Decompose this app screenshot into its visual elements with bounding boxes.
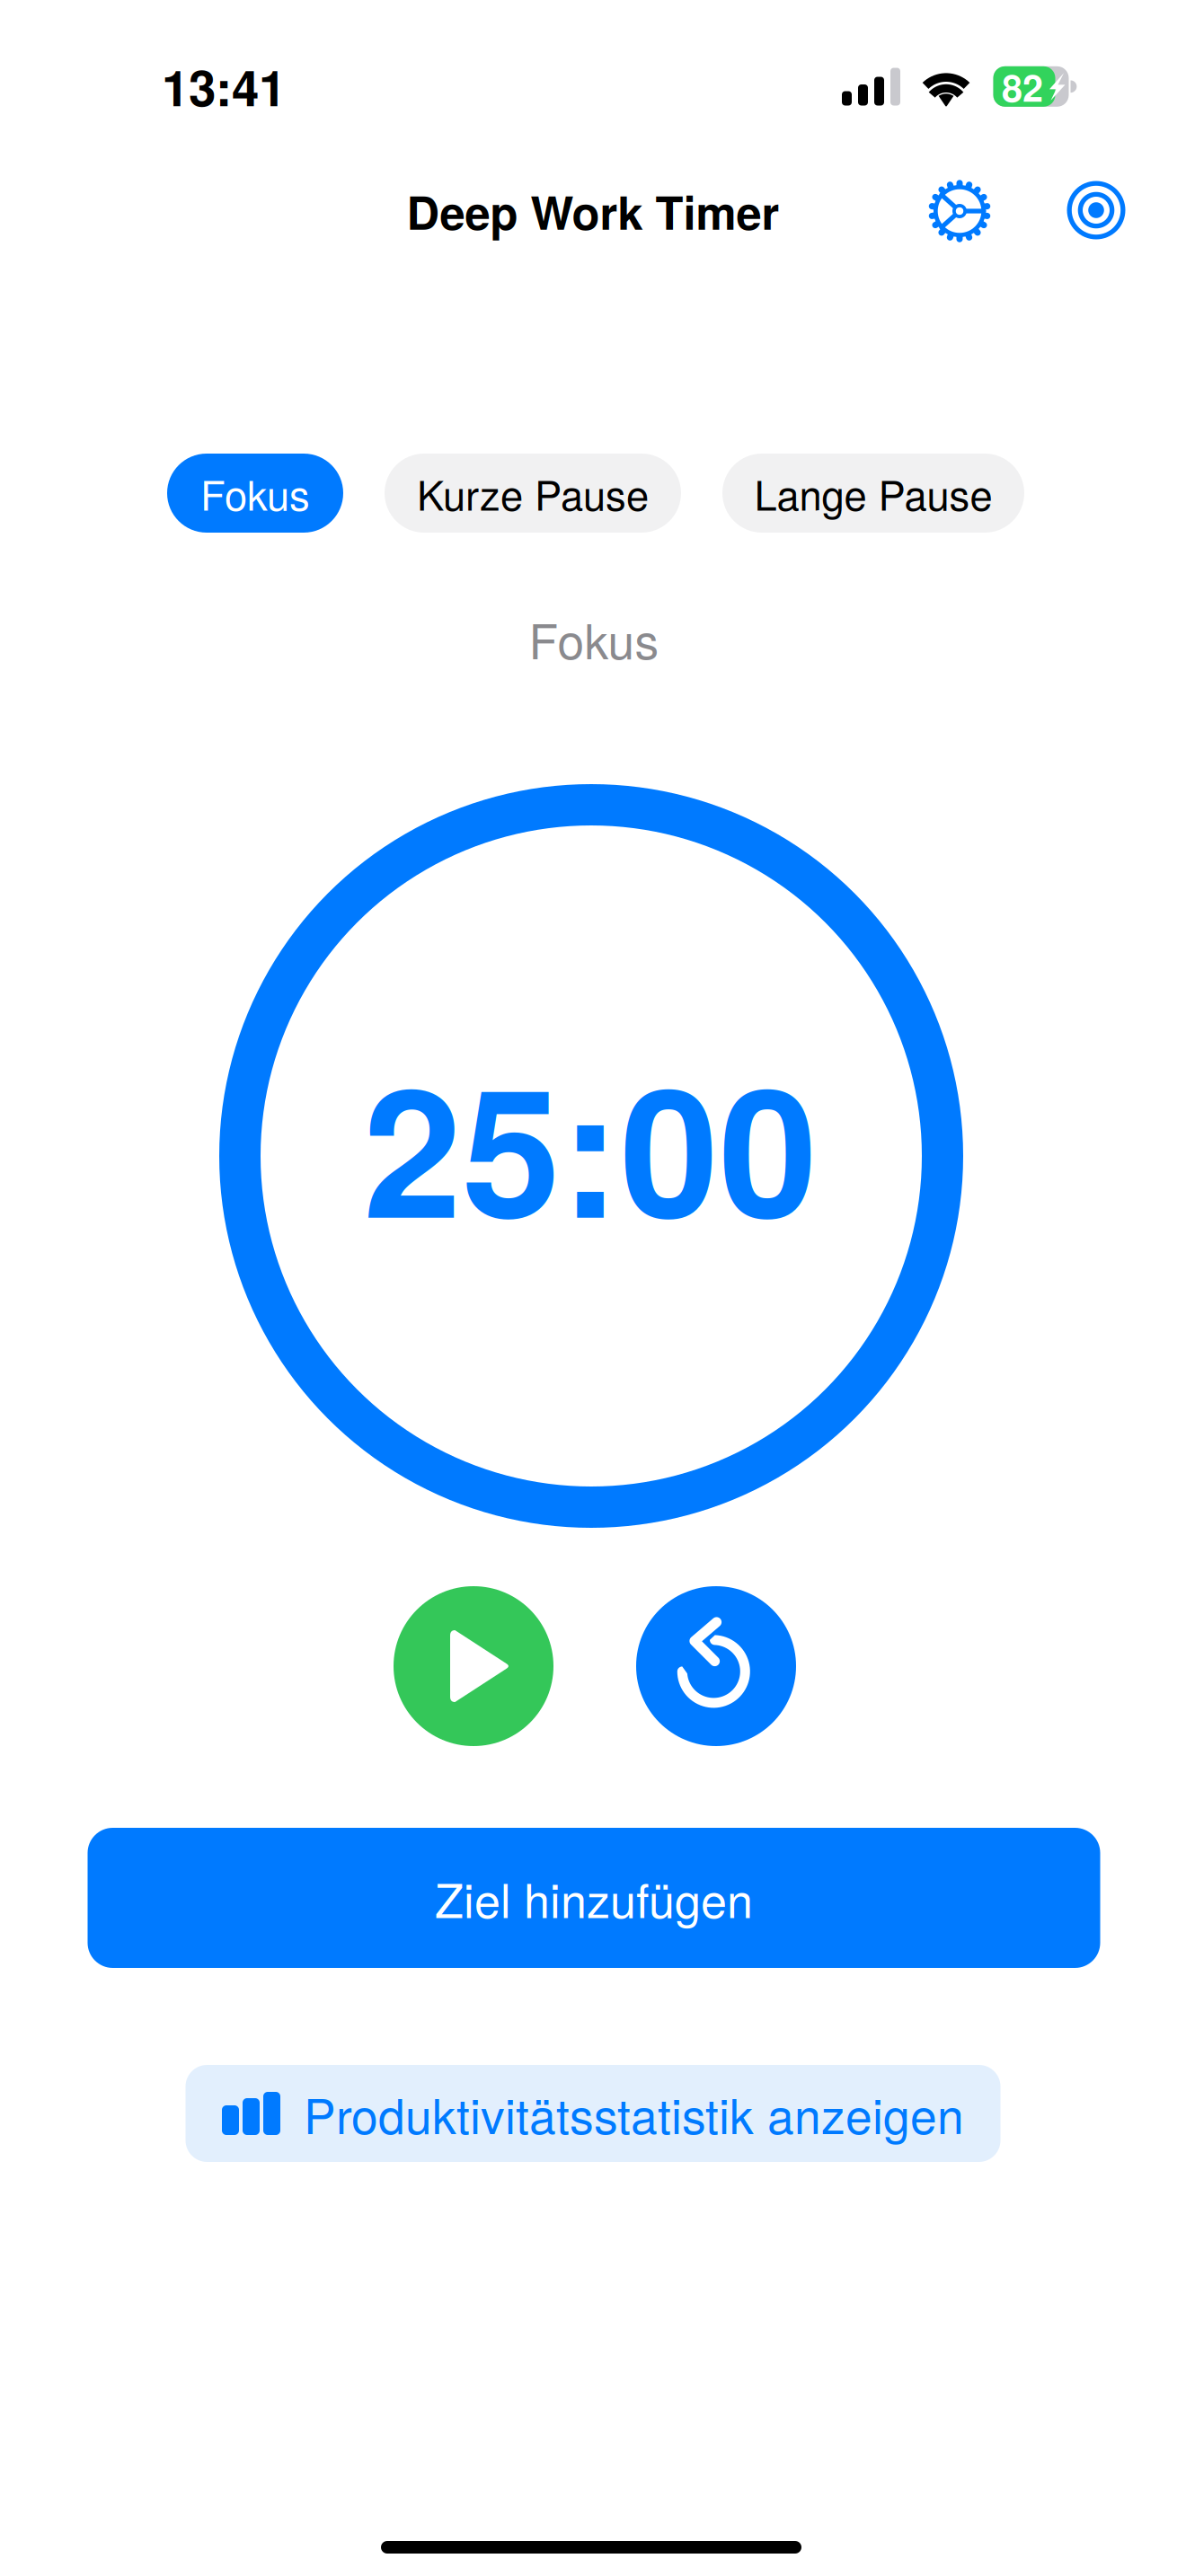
staticText: Fokus: [200, 464, 310, 522]
staticText: 25:00: [363, 1018, 818, 1272]
staticText: Fokus: [529, 604, 659, 673]
staticText: Kurze Pause: [417, 464, 649, 522]
button[interactable]: Ziel hinzufügen: [88, 1828, 1100, 1968]
staticText: Produktivitätsstatistik anzeigen: [304, 2079, 964, 2148]
button[interactable]: Start timer: [394, 1586, 553, 1746]
button[interactable]: Kurze Pause: [385, 454, 681, 533]
staticText: Ziel hinzufügen: [435, 1864, 753, 1931]
button[interactable]: Produktivitätsstatistik anzeigen: [186, 2065, 1000, 2162]
button[interactable]: Fokus: [167, 454, 343, 533]
button[interactable]: Lange Pause: [722, 454, 1024, 533]
button[interactable]: Focus goal: [1053, 167, 1139, 253]
staticText: Lange Pause: [754, 464, 992, 522]
staticText: Deep Work Timer: [407, 178, 779, 244]
button[interactable]: Reset timer: [636, 1586, 796, 1746]
staticText: 13:41: [162, 51, 286, 121]
staticText: 82: [1002, 60, 1043, 113]
button[interactable]: Settings: [916, 168, 1003, 254]
